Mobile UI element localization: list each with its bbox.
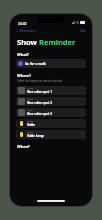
staticText: Office — [27, 120, 34, 123]
staticText: Hue color spot 1 — [27, 90, 52, 94]
button[interactable]: Edit — [76, 28, 90, 34]
staticText: Edit — [80, 29, 86, 33]
staticText: When? — [17, 144, 30, 149]
other: Lamp on — [18, 120, 25, 127]
staticText: Office — [27, 109, 34, 112]
staticText: Reminder — [39, 37, 76, 47]
staticText: Hue color spot 2 — [27, 101, 52, 105]
button[interactable]: Lamp on — [16, 130, 86, 139]
staticText: Office — [27, 131, 34, 134]
staticText: Hue color spot 3 — [27, 112, 52, 116]
staticText: Office — [27, 87, 34, 90]
staticText: Select the lamps you want to activate — [17, 79, 63, 83]
other: Lamp off — [18, 109, 25, 116]
other: Lamp on — [18, 131, 25, 138]
button[interactable]: Go for a walk — [16, 59, 86, 68]
button[interactable]: Lamp off — [16, 86, 86, 95]
staticText: Where? — [17, 73, 32, 78]
staticText: Table lamp — [27, 134, 44, 138]
button[interactable]: Lamp off — [16, 108, 86, 117]
staticText: Reminders — [20, 29, 36, 33]
staticText: Table — [27, 123, 36, 127]
other: Lamp off — [18, 87, 25, 94]
button[interactable]: Reminders — [12, 28, 39, 34]
button[interactable]: Lamp off — [16, 97, 86, 106]
staticText: Office — [27, 98, 34, 101]
button[interactable]: Lamp on — [16, 119, 86, 128]
staticText: Go for a walk — [25, 62, 46, 66]
other: Lamp off — [18, 98, 25, 105]
staticText: What? — [17, 52, 29, 57]
staticText: 23:32 — [18, 21, 27, 25]
staticText: Show — [17, 37, 39, 47]
